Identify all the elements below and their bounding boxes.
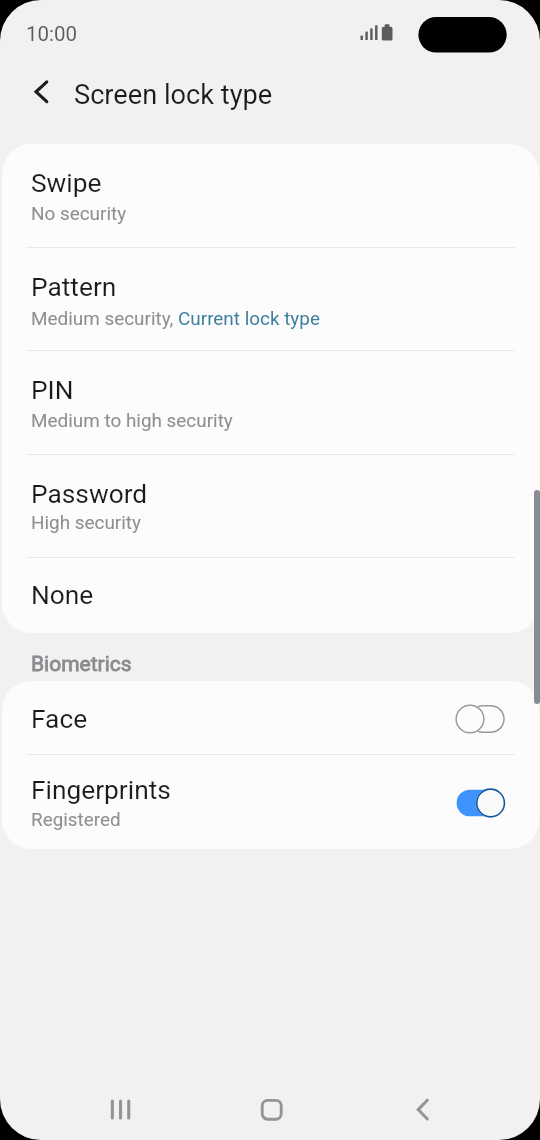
staticText: Face <box>31 704 88 735</box>
button[interactable]: Home <box>249 1087 294 1132</box>
button[interactable]: Face <box>2 681 539 755</box>
button[interactable]: Swipe <box>2 144 539 248</box>
button[interactable]: Navigate up <box>19 69 64 114</box>
staticText: Fingerprints <box>31 775 171 806</box>
staticText: Registered <box>31 808 121 830</box>
staticText: PIN <box>31 375 74 406</box>
staticText: Password <box>31 479 148 510</box>
button[interactable]: On <box>443 779 513 827</box>
button[interactable]: Pattern <box>2 248 539 351</box>
button[interactable]: Off <box>443 695 513 743</box>
staticText: Pattern <box>31 272 117 303</box>
staticText: 10:00 <box>26 22 78 46</box>
button[interactable]: Recent apps <box>98 1087 143 1132</box>
staticText: Biometrics <box>31 652 132 677</box>
button[interactable]: Back <box>400 1087 445 1132</box>
staticText: None <box>31 580 94 611</box>
button[interactable]: Fingerprints <box>2 755 539 849</box>
staticText: Screen lock type <box>74 79 273 111</box>
button[interactable]: Password <box>2 454 539 557</box>
button[interactable]: None <box>2 557 539 633</box>
staticText: Swipe <box>31 168 102 199</box>
staticText: Medium security, Current lock type <box>31 307 320 329</box>
staticText: High security <box>31 511 141 533</box>
staticText: No security <box>31 202 127 224</box>
button[interactable]: PIN <box>2 351 539 454</box>
staticText: Medium to high security <box>31 409 233 431</box>
